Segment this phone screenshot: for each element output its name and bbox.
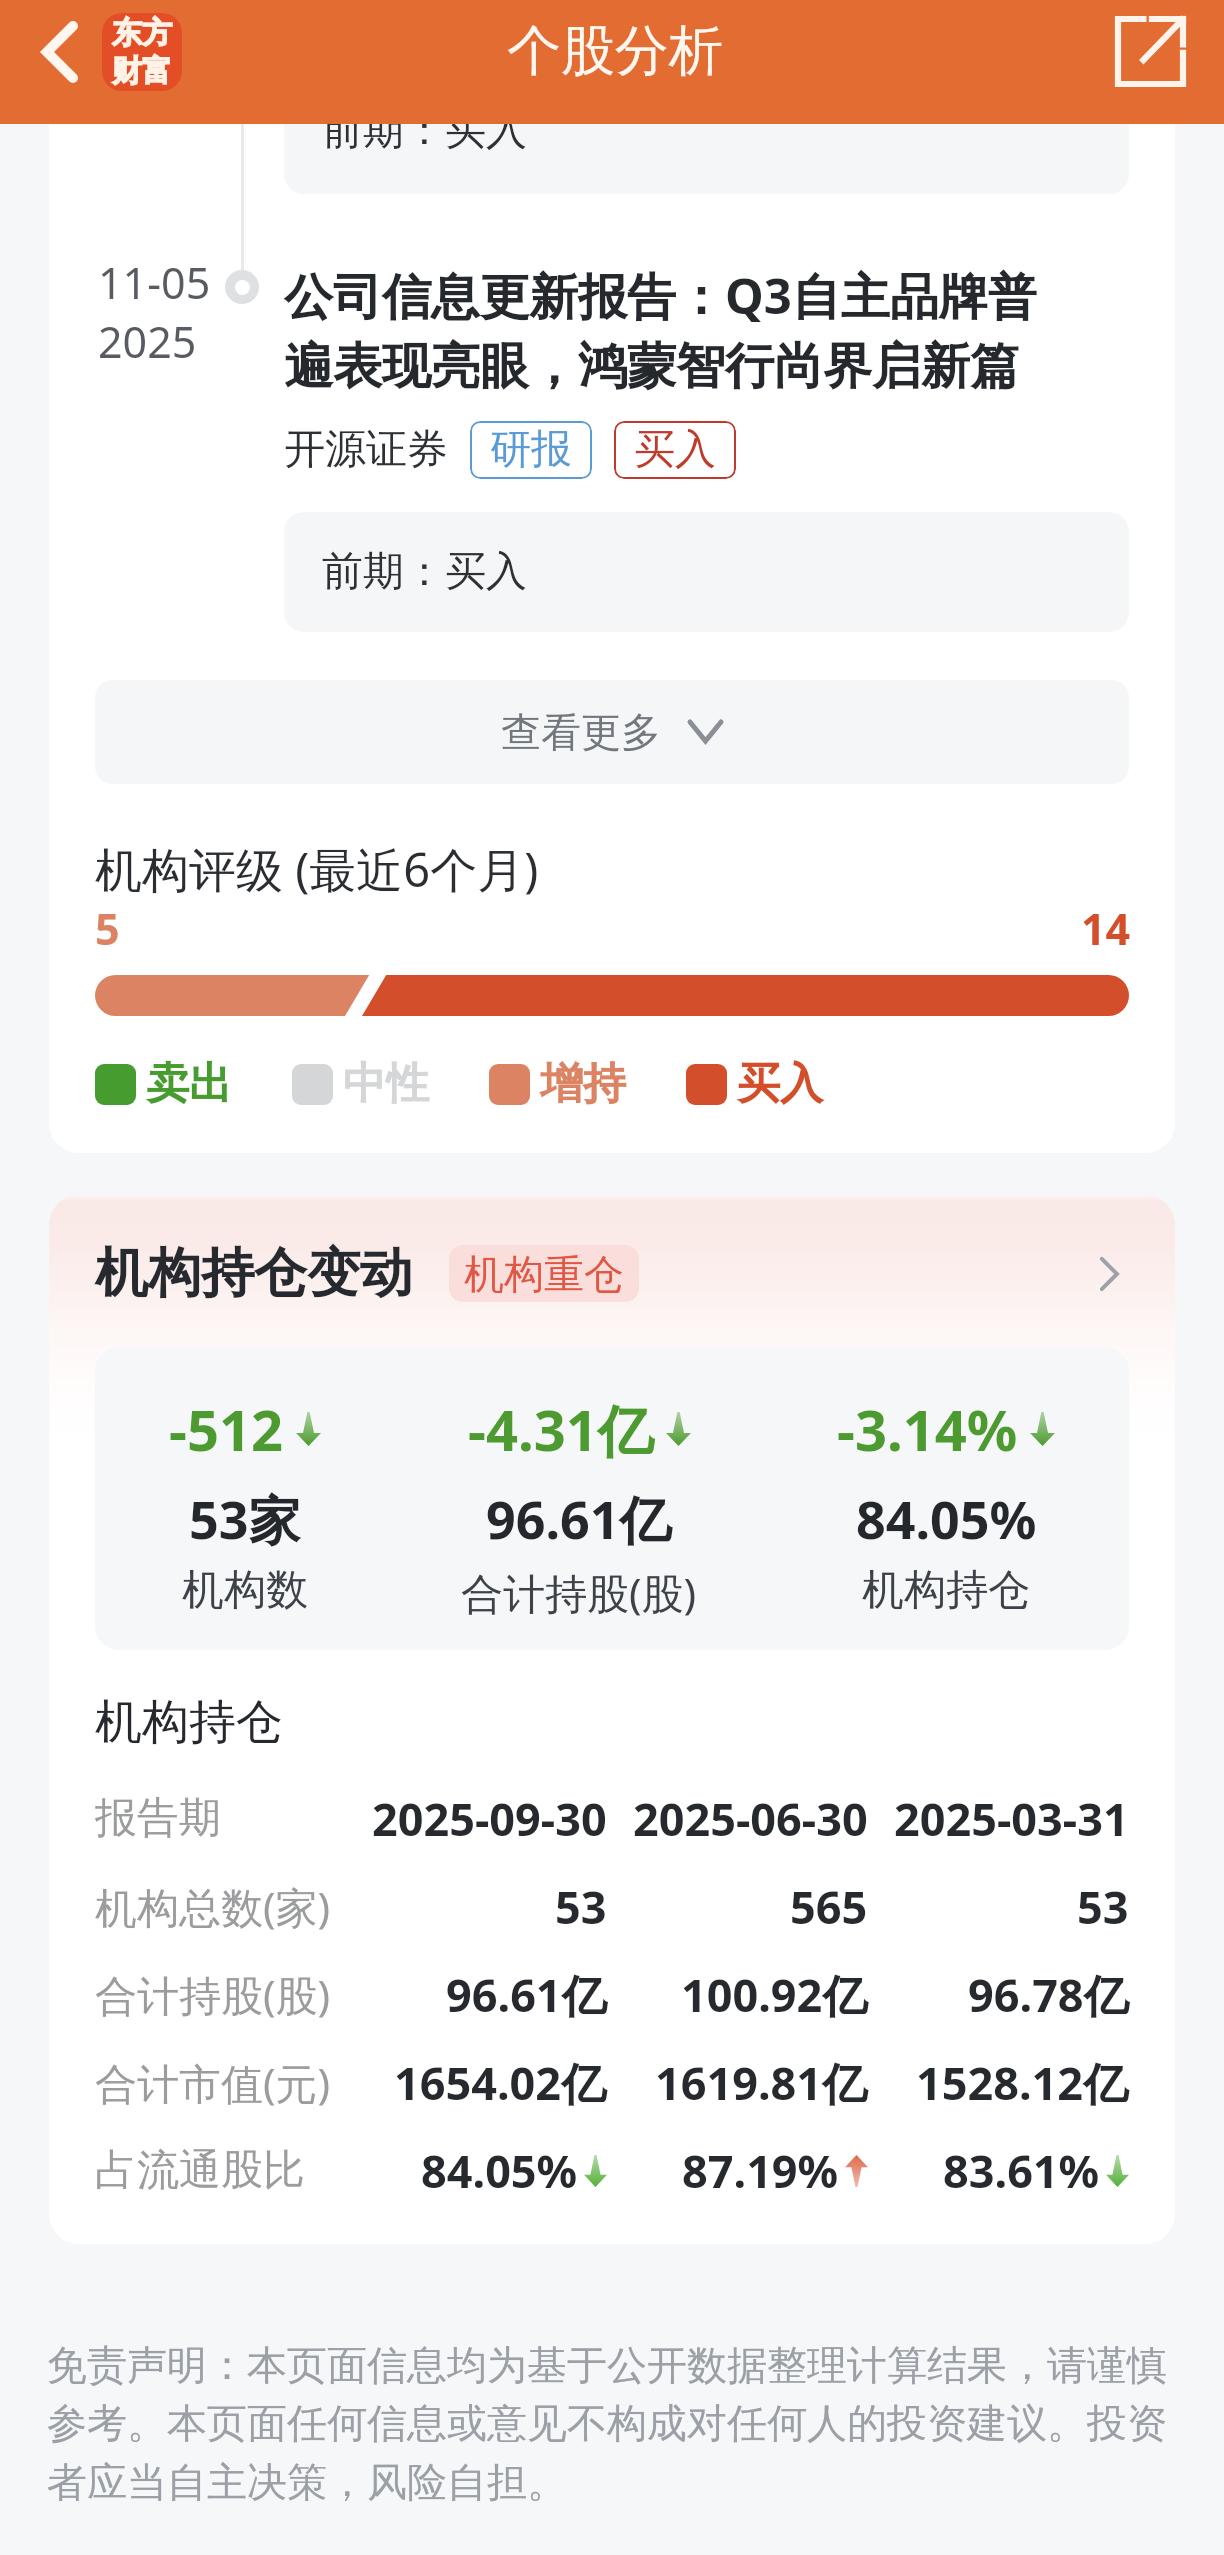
- staticText: 免责声明：本页面信息均为基于公开数据整理计算结果，请谨慎参考。本页面任何信息或意…: [47, 2340, 1177, 2508]
- staticText: 买入: [634, 424, 716, 476]
- button[interactable]: 买入: [614, 421, 736, 479]
- staticText: 2025: [98, 312, 197, 371]
- staticText: 1619.81亿: [655, 2052, 868, 2113]
- staticText: 96.61亿: [446, 1964, 607, 2025]
- staticText: 1528.12亿: [916, 2052, 1129, 2113]
- staticText: 机构持仓: [862, 1564, 1030, 1617]
- staticText: -4.31亿: [468, 1391, 654, 1467]
- staticText: 2025-06-30: [633, 1788, 868, 1849]
- staticText: 报告期: [95, 1792, 345, 1845]
- staticText: 53: [555, 1876, 607, 1937]
- staticText: 财富: [112, 52, 172, 90]
- staticText: 96.78亿: [968, 1964, 1129, 2025]
- staticText: 占流通股比: [95, 2144, 345, 2197]
- staticText: 前期：买入: [322, 546, 527, 598]
- button[interactable]: 机构持仓变动: [49, 1237, 1175, 1310]
- staticText: 机构持仓: [95, 1693, 283, 1752]
- button[interactable]: 公司信息更新报告：Q3自主品牌普遍表现亮眼，鸿蒙智行尚界启新篇: [274, 252, 1129, 632]
- staticText: 机构持仓变动: [95, 1240, 413, 1307]
- staticText: 83.61%: [943, 2140, 1100, 2201]
- staticText: 565: [790, 1876, 868, 1937]
- staticText: 增持: [540, 1057, 626, 1111]
- staticText: 11-05: [98, 253, 211, 312]
- staticText: 机构评级 (最近6个月): [95, 837, 539, 901]
- staticText: 84.05%: [856, 1483, 1037, 1554]
- staticText: 53家: [189, 1483, 301, 1554]
- staticText: 5: [95, 899, 120, 958]
- button[interactable]: 查看更多: [95, 680, 1129, 784]
- staticText: 卖出: [146, 1057, 232, 1111]
- button[interactable]: Share: [1115, 16, 1186, 87]
- staticText: -512: [169, 1391, 284, 1467]
- staticText: 机构数: [182, 1564, 308, 1617]
- staticText: 53: [1077, 1876, 1129, 1937]
- staticText: 合计持股(股): [461, 1564, 697, 1621]
- staticText: 100.92亿: [681, 1964, 868, 2025]
- staticText: 买入: [737, 1057, 823, 1111]
- button[interactable]: 研报: [470, 421, 592, 479]
- staticText: 1654.02亿: [394, 2052, 607, 2113]
- staticText: 开源证券: [284, 424, 448, 476]
- staticText: 机构总数(家): [95, 1878, 345, 1935]
- button[interactable]: East Money: [102, 13, 182, 91]
- staticText: 前期：买入: [322, 124, 527, 157]
- staticText: 查看更多: [501, 707, 661, 757]
- staticText: 96.61亿: [486, 1483, 672, 1554]
- staticText: 84.05%: [421, 2140, 578, 2201]
- staticText: 2025-09-30: [372, 1788, 607, 1849]
- staticText: -3.14%: [837, 1391, 1018, 1467]
- staticText: 2025-03-31: [894, 1788, 1129, 1849]
- staticText: 14: [1081, 899, 1131, 958]
- staticText: 个股分析: [507, 17, 723, 85]
- staticText: 东方: [112, 14, 172, 52]
- button[interactable]: Back: [16, 8, 104, 96]
- staticText: 机构重仓: [464, 1249, 624, 1299]
- staticText: 87.19%: [682, 2140, 839, 2201]
- staticText: 合计市值(元): [95, 2054, 345, 2111]
- staticText: 公司信息更新报告：Q3自主品牌普遍表现亮眼，鸿蒙智行尚界启新篇: [284, 262, 1062, 397]
- staticText: 合计持股(股): [95, 1966, 345, 2023]
- staticText: 中性: [343, 1057, 429, 1111]
- staticText: 研报: [490, 424, 572, 476]
